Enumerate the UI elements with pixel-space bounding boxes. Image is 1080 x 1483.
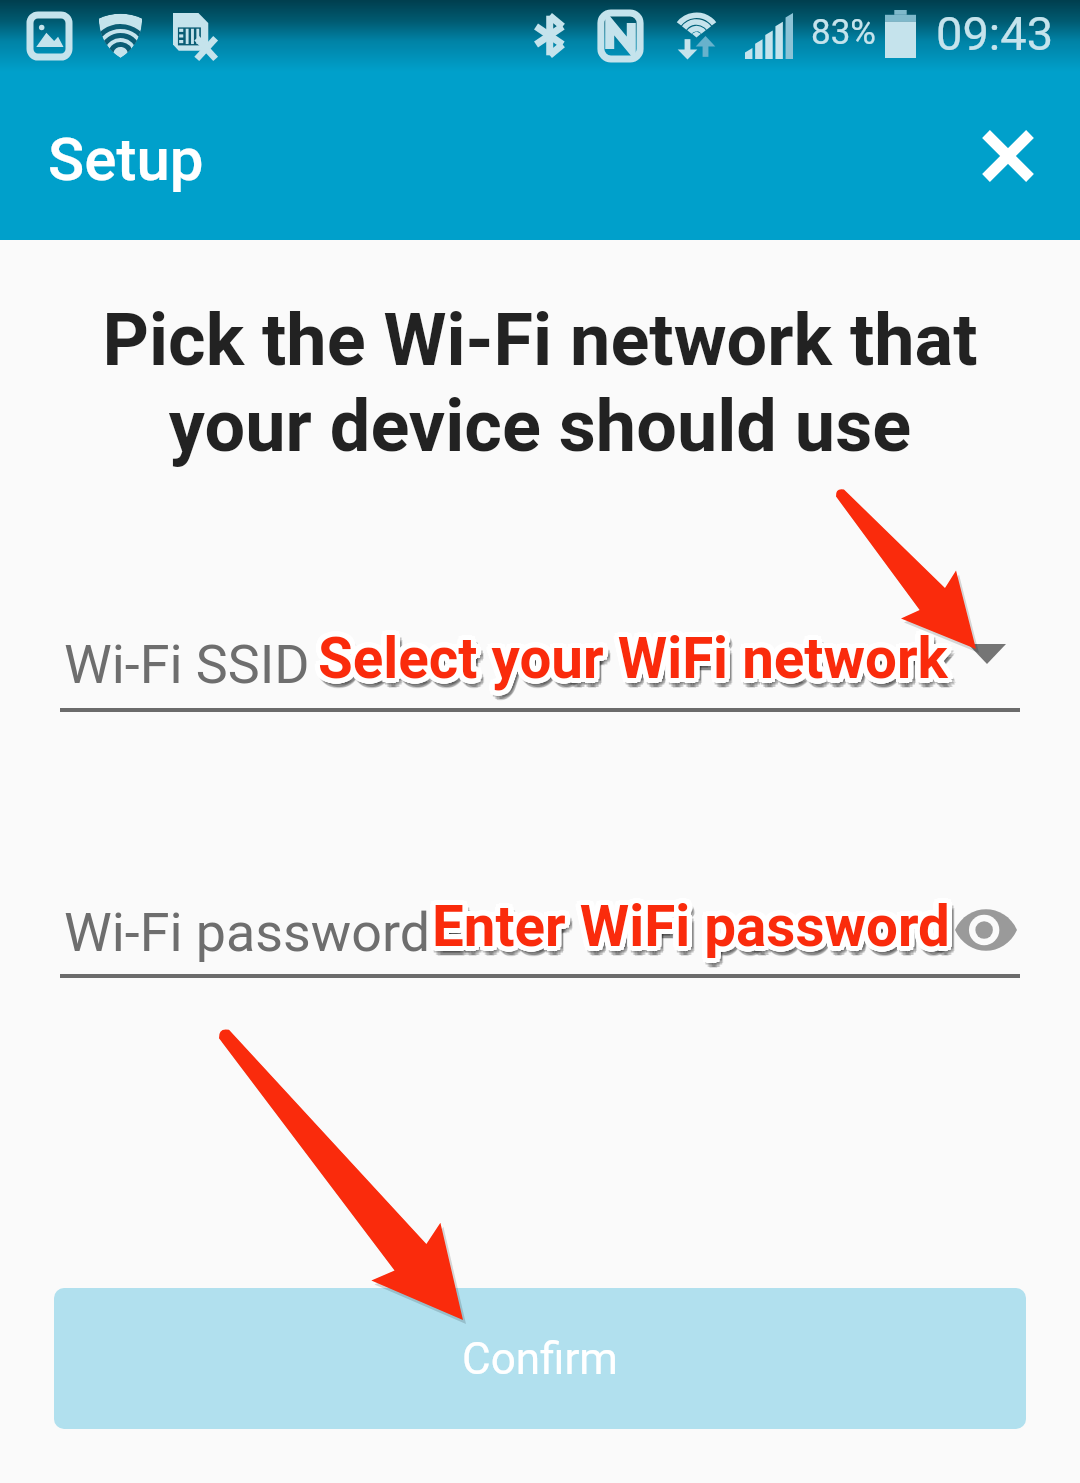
- staticText: Enter WiFi password: [439, 901, 957, 967]
- staticText: Select your WiFi network: [314, 622, 944, 688]
- staticText: Enter WiFi password: [430, 890, 948, 956]
- staticText: Select your WiFi network: [319, 626, 949, 692]
- staticText: Enter WiFi password: [427, 894, 945, 960]
- staticText: Select your WiFi network: [322, 623, 952, 689]
- staticText: Enter WiFi password: [436, 903, 954, 969]
- staticText: Select your WiFi network: [319, 621, 949, 687]
- staticText: Enter WiFi password: [427, 895, 945, 961]
- staticText: Setup: [48, 124, 204, 194]
- staticText: Select your WiFi network: [318, 621, 948, 687]
- staticText: 83%: [811, 12, 876, 53]
- staticText: Select your WiFi network: [313, 626, 943, 692]
- button[interactable]: Wi-Fi password: [60, 862, 1020, 974]
- staticText: Enter WiFi password: [436, 891, 954, 957]
- staticText: Select your WiFi network: [322, 626, 952, 692]
- staticText: Enter WiFi password: [433, 903, 951, 969]
- staticText: Select your WiFi network: [316, 632, 946, 698]
- staticText: Enter WiFi password: [434, 898, 952, 964]
- button[interactable]: Show password: [955, 907, 1017, 953]
- staticText: Pick the Wi-Fi network that your device …: [0, 298, 1080, 469]
- staticText: Enter WiFi password: [433, 894, 951, 960]
- staticText: Enter WiFi password: [427, 893, 945, 959]
- staticText: Enter WiFi password: [432, 894, 950, 960]
- staticText: Select your WiFi network: [320, 630, 950, 696]
- staticText: Enter WiFi password: [434, 904, 952, 970]
- staticText: Select your WiFi network: [323, 626, 953, 692]
- staticText: Enter WiFi password: [437, 895, 955, 961]
- staticText: Select your WiFi network: [320, 636, 950, 702]
- staticText: Enter WiFi password: [432, 903, 950, 969]
- staticText: Enter WiFi password: [432, 894, 950, 960]
- staticText: Enter WiFi password: [428, 892, 946, 958]
- staticText: Select your WiFi network: [320, 622, 950, 688]
- staticText: Select your WiFi network: [325, 628, 955, 694]
- staticText: Enter WiFi password: [437, 894, 955, 960]
- staticText: Select your WiFi network: [321, 626, 951, 692]
- staticText: Select your WiFi network: [325, 633, 955, 699]
- staticText: Enter WiFi password: [430, 898, 948, 964]
- staticText: Enter WiFi password: [440, 899, 958, 965]
- staticText: Select your WiFi network: [322, 629, 952, 695]
- staticText: Select your WiFi network: [316, 628, 946, 694]
- staticText: Enter WiFi password: [429, 898, 947, 964]
- staticText: Enter WiFi password: [433, 889, 951, 955]
- button[interactable]: Wi-Fi SSID: [60, 594, 1020, 706]
- staticText: Select your WiFi network: [317, 631, 947, 697]
- staticText: Select your WiFi network: [317, 621, 947, 687]
- staticText: Wi-Fi password: [64, 901, 431, 964]
- button[interactable]: Confirm: [54, 1288, 1026, 1429]
- staticText: Select your WiFi network: [323, 635, 953, 701]
- staticText: Enter WiFi password: [430, 896, 948, 962]
- staticText: Select your WiFi network: [323, 626, 953, 692]
- staticText: Select your WiFi network: [325, 632, 955, 698]
- staticText: Select your WiFi network: [318, 631, 948, 697]
- staticText: Select your WiFi network: [326, 631, 956, 697]
- staticText: Wi-Fi SSID: [64, 633, 310, 696]
- staticText: Enter WiFi password: [430, 901, 948, 967]
- staticText: Select your WiFi network: [316, 629, 946, 695]
- staticText: 09:43: [936, 6, 1054, 61]
- staticText: Select your WiFi network: [319, 635, 949, 701]
- staticText: Enter WiFi password: [432, 889, 950, 955]
- staticText: Enter WiFi password: [436, 890, 954, 956]
- staticText: Select your WiFi network: [323, 627, 953, 693]
- staticText: Enter WiFi password: [431, 899, 949, 965]
- staticText: Select your WiFi network: [318, 635, 948, 701]
- staticText: Select your WiFi network: [318, 626, 948, 692]
- staticText: Enter WiFi password: [437, 894, 955, 960]
- staticText: Enter WiFi password: [439, 900, 957, 966]
- button[interactable]: Close: [958, 106, 1058, 206]
- staticText: Enter WiFi password: [432, 899, 950, 965]
- staticText: Select your WiFi network: [316, 630, 946, 696]
- staticText: Enter WiFi password: [428, 898, 946, 964]
- staticText: Enter WiFi password: [430, 897, 948, 963]
- staticText: Enter WiFi password: [433, 899, 951, 965]
- staticText: Enter WiFi password: [437, 903, 955, 969]
- staticText: Select your WiFi network: [322, 622, 952, 688]
- staticText: Enter WiFi password: [437, 893, 955, 959]
- staticText: Select your WiFi network: [315, 630, 945, 696]
- staticText: Enter WiFi password: [436, 894, 954, 960]
- staticText: Enter WiFi password: [439, 897, 957, 963]
- staticText: Select your WiFi network: [322, 630, 952, 696]
- staticText: Enter WiFi password: [428, 897, 946, 963]
- staticText: Enter WiFi password: [434, 890, 952, 956]
- staticText: Select your WiFi network: [316, 622, 946, 688]
- staticText: Select your WiFi network: [319, 631, 949, 697]
- staticText: Enter WiFi password: [439, 896, 957, 962]
- button[interactable]: Select network: [964, 638, 1010, 670]
- staticText: Select your WiFi network: [313, 627, 943, 693]
- staticText: Select your WiFi network: [313, 625, 943, 691]
- staticText: Select your WiFi network: [314, 630, 944, 696]
- staticText: Enter WiFi password: [430, 900, 948, 966]
- staticText: Select your WiFi network: [323, 625, 953, 691]
- staticText: Enter WiFi password: [436, 898, 954, 964]
- staticText: Select your WiFi network: [314, 624, 944, 690]
- staticText: Select your WiFi network: [316, 633, 946, 699]
- staticText: Confirm: [462, 1333, 618, 1385]
- staticText: Enter WiFi password: [435, 894, 953, 960]
- staticText: Enter WiFi password: [436, 897, 954, 963]
- staticText: Enter WiFi password: [428, 890, 946, 956]
- staticText: Select your WiFi network: [325, 629, 955, 695]
- staticText: Select your WiFi network: [322, 635, 952, 701]
